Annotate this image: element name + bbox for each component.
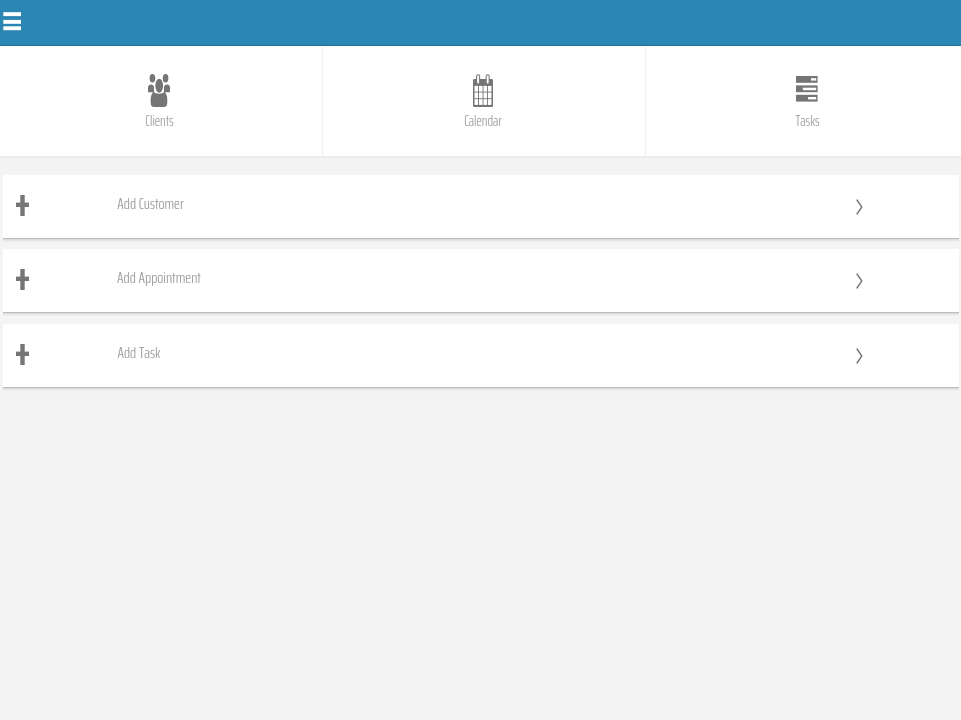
button[interactable]: Tasks — [645, 46, 961, 156]
staticText: Add Customer — [117, 191, 184, 216]
staticText: Tasks — [795, 109, 820, 132]
button[interactable]: Add Appointment — [3, 249, 959, 312]
button[interactable]: Clients — [0, 46, 322, 156]
button[interactable]: Add Customer — [3, 175, 959, 238]
staticText: Add Appointment — [117, 265, 201, 290]
staticText: Calendar — [464, 109, 502, 132]
button[interactable]: Add Task — [3, 324, 959, 387]
button[interactable]: Calendar — [323, 46, 645, 156]
button[interactable]: Open navigation menu — [0, 8, 25, 35]
staticText: Add Task — [117, 340, 161, 365]
staticText: Clients — [145, 109, 174, 132]
